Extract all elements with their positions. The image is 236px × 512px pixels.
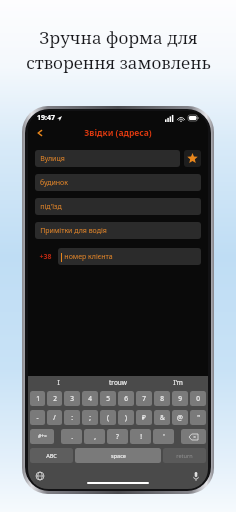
button[interactable]: Voice input <box>189 469 203 483</box>
button[interactable]: #+= <box>30 429 54 444</box>
staticText: space <box>111 452 126 459</box>
button[interactable]: ( <box>100 410 116 425</box>
button[interactable]: ABC <box>30 448 73 463</box>
staticText: ! <box>140 432 142 441</box>
staticText: 0 <box>196 394 200 403</box>
staticText: @ <box>177 413 183 422</box>
staticText: ? <box>116 432 119 441</box>
button[interactable]: space <box>75 448 161 463</box>
staticText: 19:47 <box>37 113 55 123</box>
button[interactable]: Back <box>33 126 47 140</box>
staticText: ABC <box>46 452 57 459</box>
staticText: " <box>197 413 200 422</box>
staticText: trouw <box>109 378 127 387</box>
staticText: 8 <box>160 394 164 403</box>
button[interactable]: 1 <box>30 391 45 406</box>
button[interactable]: @ <box>172 410 188 425</box>
staticText: під'їзд <box>40 202 62 212</box>
staticText: Звідки (адреса) <box>84 127 152 139</box>
staticText: 1 <box>36 394 40 403</box>
button[interactable]: під'їзд <box>35 198 201 215</box>
staticText: #+= <box>38 433 47 440</box>
button[interactable]: - <box>30 410 45 425</box>
staticText: , <box>94 432 96 441</box>
staticText: & <box>160 413 165 422</box>
staticText: створення замовлень <box>26 51 211 74</box>
staticText: - <box>36 413 39 422</box>
button[interactable]: 3 <box>64 391 80 406</box>
staticText: ) <box>125 413 127 422</box>
staticText: ; <box>89 413 91 422</box>
staticText: 9 <box>178 394 182 403</box>
staticText: ₽ <box>142 413 146 422</box>
button[interactable]: 4 <box>82 391 98 406</box>
button[interactable]: 9 <box>172 391 188 406</box>
staticText: return <box>176 452 193 459</box>
button[interactable]: & <box>154 410 170 425</box>
button[interactable]: ; <box>82 410 98 425</box>
button[interactable]: : <box>64 410 80 425</box>
button[interactable]: ) <box>118 410 134 425</box>
staticText: 3 <box>70 394 74 403</box>
staticText: Примітки для водія <box>40 226 107 236</box>
button[interactable]: Change language <box>33 469 47 483</box>
button[interactable]: trouw <box>88 376 148 389</box>
staticText: I'm <box>173 378 183 387</box>
button[interactable]: 0 <box>190 391 206 406</box>
staticText: 6 <box>124 394 128 403</box>
button[interactable]: ₽ <box>136 410 152 425</box>
button[interactable]: I'm <box>148 376 208 389</box>
button[interactable]: . <box>61 429 82 444</box>
staticText: . <box>71 432 73 441</box>
button[interactable]: 5 <box>100 391 116 406</box>
button[interactable]: ' <box>153 429 174 444</box>
button[interactable]: / <box>47 410 62 425</box>
button[interactable]: 7 <box>136 391 152 406</box>
button[interactable]: ? <box>107 429 128 444</box>
staticText: +38 <box>39 252 52 262</box>
button[interactable]: 2 <box>47 391 62 406</box>
staticText: 4 <box>88 394 92 403</box>
staticText: I <box>57 378 60 387</box>
staticText: : <box>71 413 73 422</box>
button[interactable]: 6 <box>118 391 134 406</box>
button[interactable]: 8 <box>154 391 170 406</box>
staticText: / <box>53 413 56 422</box>
staticText: ( <box>107 413 109 422</box>
button[interactable]: будинок <box>35 174 201 191</box>
staticText: номер клієнта <box>64 252 113 262</box>
button[interactable]: I <box>28 376 88 389</box>
staticText: 5 <box>106 394 110 403</box>
staticText: Зручна форма для <box>39 26 198 49</box>
button[interactable]: Примітки для водія <box>35 222 201 239</box>
button[interactable]: , <box>84 429 105 444</box>
staticText: 2 <box>53 394 57 403</box>
button[interactable]: Backspace <box>181 429 206 444</box>
button[interactable]: return <box>163 448 206 463</box>
button[interactable]: ! <box>130 429 151 444</box>
staticText: будинок <box>40 178 68 188</box>
staticText: Вулиця <box>40 154 65 164</box>
button[interactable]: " <box>190 410 206 425</box>
button[interactable]: номер клієнта <box>58 248 201 265</box>
staticText: 7 <box>142 394 146 403</box>
button[interactable]: Вулиця <box>35 150 180 167</box>
staticText: ' <box>163 432 165 441</box>
button[interactable]: Favourite <box>184 150 201 167</box>
